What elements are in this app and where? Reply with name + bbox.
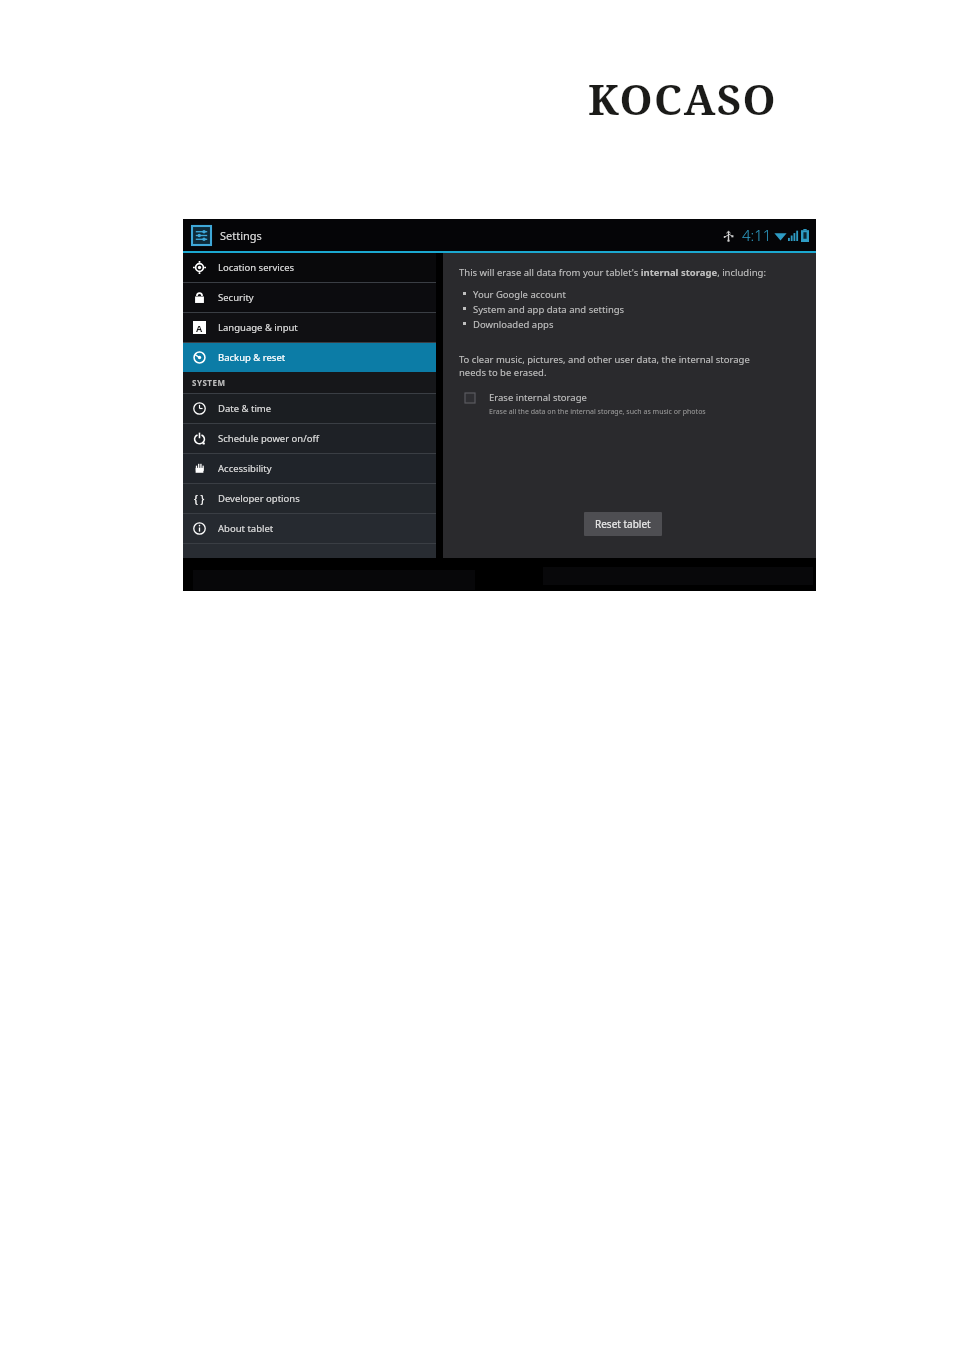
staticText: SYSTEM (192, 377, 226, 388)
staticText: Settings (220, 228, 262, 243)
button[interactable]: Erase internal storage checkbox (459, 391, 802, 417)
button[interactable]: About tablet (183, 514, 436, 543)
button[interactable]: { } (183, 484, 436, 513)
staticText: Reset tablet (595, 517, 651, 531)
staticText: Location services (218, 261, 295, 274)
staticText: KOCASO (588, 70, 778, 118)
button[interactable]: Location services (183, 253, 436, 282)
other: Erase internal storage checkbox (465, 393, 475, 403)
staticText: Security (218, 291, 254, 304)
button[interactable]: Date & time (183, 394, 436, 423)
staticText: Erase internal storage (489, 391, 587, 404)
staticText: About tablet (218, 522, 274, 535)
staticText: { } (194, 492, 205, 505)
staticText: Accessibility (218, 462, 272, 475)
staticText: 4:11 (742, 225, 772, 245)
staticText: Erase all the data on the internal stora… (489, 407, 706, 417)
staticText: Date & time (218, 402, 272, 415)
staticText: Schedule power on/off (218, 432, 320, 445)
button[interactable]: Backup & reset (183, 343, 436, 372)
button[interactable]: Reset tablet (584, 512, 662, 536)
button[interactable]: Schedule power on/off (183, 424, 436, 453)
staticText: Your Google account (473, 288, 566, 301)
staticText: This will erase all data from your table… (459, 266, 766, 279)
button[interactable]: Security (183, 283, 436, 312)
staticText: A (196, 322, 203, 334)
staticText: System and app data and settings (473, 303, 625, 316)
staticText: To clear music, pictures, and other user… (459, 353, 750, 379)
button[interactable]: A (183, 313, 436, 342)
staticText: Backup & reset (218, 351, 286, 364)
button[interactable]: Accessibility (183, 454, 436, 483)
staticText: Downloaded apps (473, 318, 554, 331)
staticText: Language & input (218, 321, 298, 334)
staticText: Developer options (218, 492, 300, 505)
